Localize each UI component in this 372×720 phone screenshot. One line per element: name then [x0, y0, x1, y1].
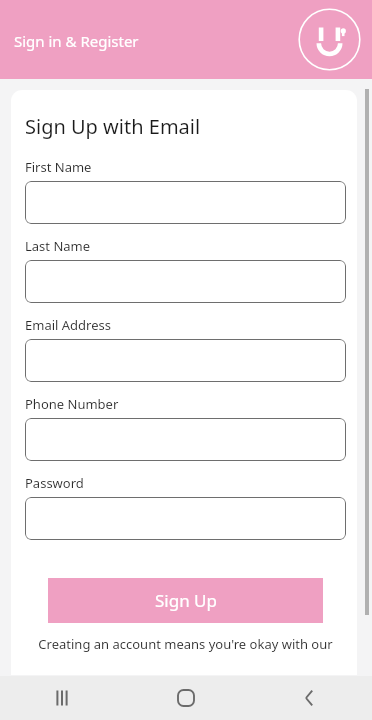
button[interactable] — [25, 260, 346, 303]
button[interactable] — [25, 339, 346, 382]
staticText: Sign Up with Email — [25, 113, 201, 140]
staticText: Sign Up — [155, 589, 217, 612]
staticText: Email Address — [25, 316, 111, 334]
button[interactable] — [25, 497, 346, 540]
staticText: First Name — [25, 158, 92, 176]
staticText: Last Name — [25, 237, 91, 255]
button[interactable]: Account — [298, 8, 361, 71]
button[interactable]: Recent apps — [0, 676, 124, 720]
staticText: Creating an account means you're okay wi… — [25, 635, 346, 653]
button[interactable] — [25, 418, 346, 461]
button[interactable] — [25, 181, 346, 224]
button[interactable]: Sign Up — [48, 578, 323, 623]
button[interactable]: Back — [248, 676, 372, 720]
staticText: Password — [25, 474, 84, 492]
staticText: Phone Number — [25, 395, 119, 413]
button[interactable]: Home — [124, 676, 248, 720]
staticText: Sign in & Register — [14, 31, 139, 51]
